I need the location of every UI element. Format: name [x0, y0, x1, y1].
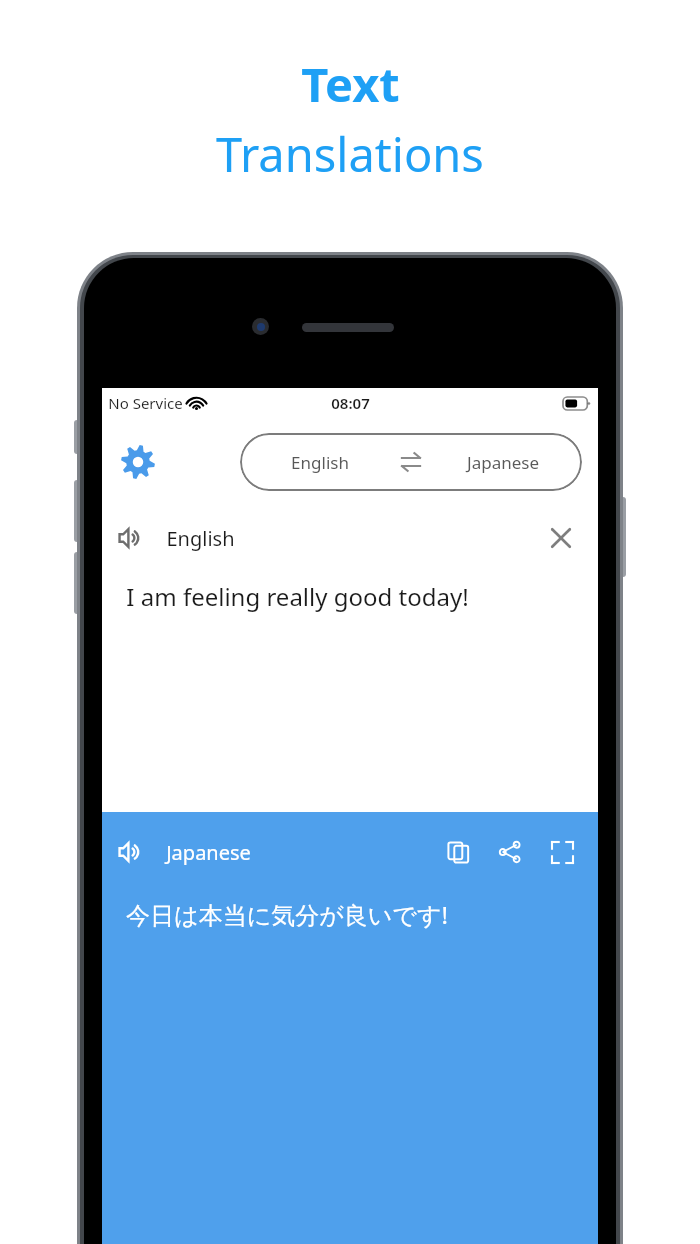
- staticText: English: [166, 525, 235, 552]
- button[interactable]: Clear: [540, 517, 582, 559]
- button[interactable]: Fullscreen: [542, 832, 582, 872]
- staticText: 08:07: [331, 393, 370, 413]
- button[interactable]: Copy: [438, 832, 478, 872]
- button[interactable]: English: [240, 433, 582, 491]
- staticText: Japanese: [467, 451, 539, 474]
- button[interactable]: Speak Japanese text: [118, 832, 158, 872]
- button[interactable]: Speak English text: [118, 518, 158, 558]
- staticText: Japanese: [166, 839, 251, 866]
- staticText: Translations: [216, 122, 484, 186]
- button[interactable]: Share: [490, 832, 530, 872]
- staticText: English: [291, 451, 349, 474]
- staticText: 今日は本当に気分が良いです!: [126, 898, 448, 931]
- staticText: I am feeling really good today!: [126, 580, 469, 613]
- staticText: Text: [301, 52, 400, 116]
- button[interactable]: Settings: [114, 438, 162, 486]
- staticText: No Service: [108, 393, 183, 413]
